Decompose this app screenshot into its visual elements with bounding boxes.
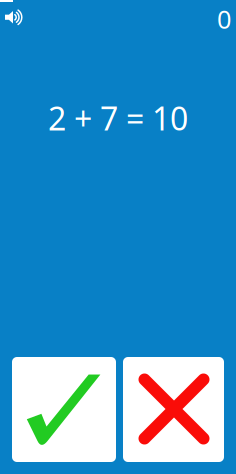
staticText: 0 <box>217 2 231 36</box>
button[interactable]: Sound <box>5 11 37 41</box>
button[interactable]: Correct <box>12 357 116 462</box>
button[interactable]: Wrong <box>123 357 224 462</box>
staticText: 2 + 7 = 10 <box>48 97 188 139</box>
